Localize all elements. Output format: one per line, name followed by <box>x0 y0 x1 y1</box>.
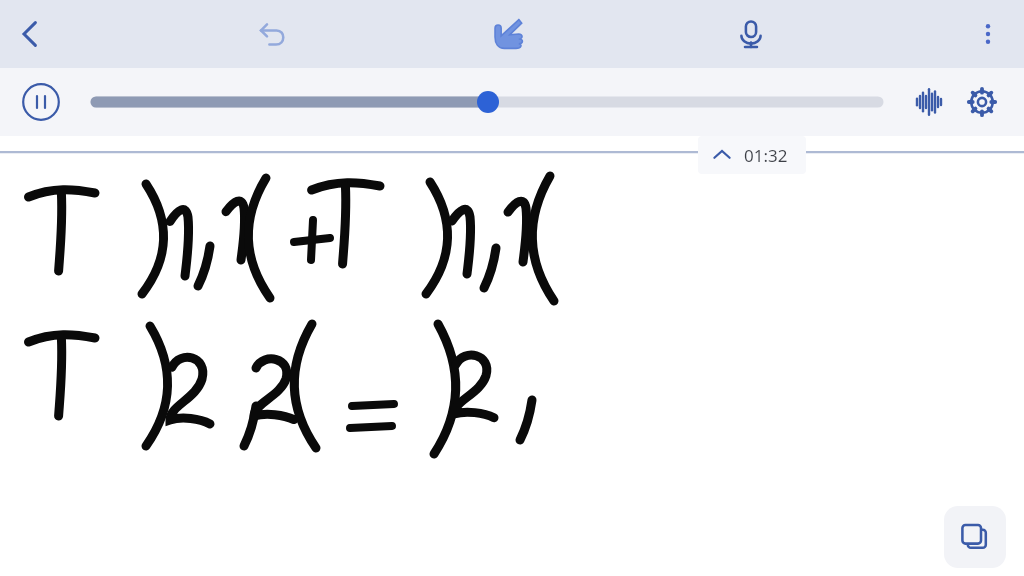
button[interactable]: Back <box>0 4 60 64</box>
button[interactable]: Undo <box>243 4 303 64</box>
button[interactable]: Microphone <box>721 4 781 64</box>
button[interactable]: Pages <box>944 506 1006 568</box>
button[interactable] <box>88 86 886 118</box>
button[interactable]: Settings <box>956 76 1008 128</box>
button[interactable]: Audio waveform <box>903 76 955 128</box>
button[interactable]: Pause <box>13 74 69 130</box>
staticText: 01:32 <box>744 144 788 167</box>
button[interactable]: Pointer tool <box>478 4 538 64</box>
button[interactable]: 01:32 <box>698 136 806 174</box>
button[interactable]: More options <box>958 4 1018 64</box>
